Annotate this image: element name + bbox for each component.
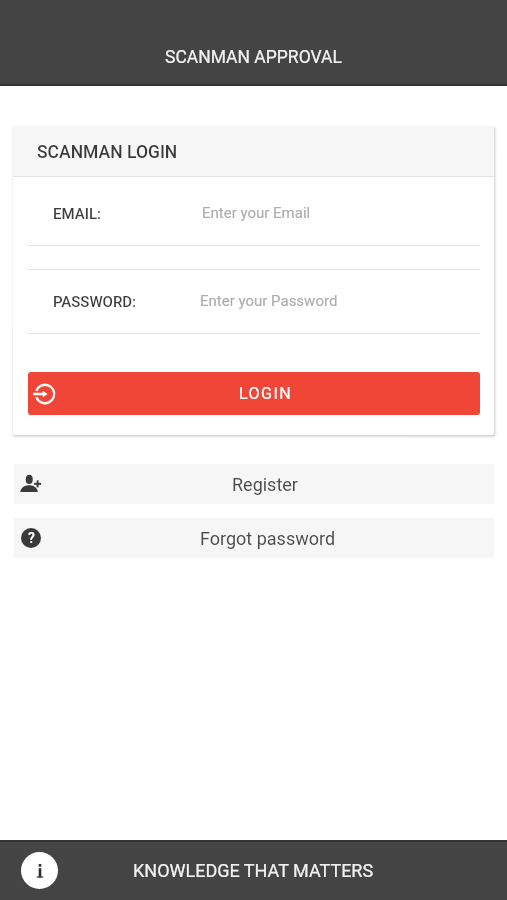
staticText: SCANMAN APPROVAL [165, 47, 342, 68]
staticText: KNOWLEDGE THAT MATTERS [133, 860, 374, 881]
button[interactable]: Register [14, 464, 494, 504]
staticText: Forgot password [200, 528, 336, 549]
staticText: ? [28, 530, 35, 546]
staticText: SCANMAN LOGIN [37, 142, 178, 163]
button[interactable]: ? [14, 518, 494, 558]
staticText: Enter your Email [202, 204, 311, 222]
button[interactable]: Information [21, 852, 58, 889]
staticText: Enter your Password [200, 292, 338, 310]
staticText: LOGIN [239, 384, 293, 403]
staticText: EMAIL: [53, 205, 102, 223]
staticText: Register [232, 474, 298, 495]
button[interactable]: LOGIN [28, 372, 480, 415]
staticText: PASSWORD: [53, 293, 137, 311]
